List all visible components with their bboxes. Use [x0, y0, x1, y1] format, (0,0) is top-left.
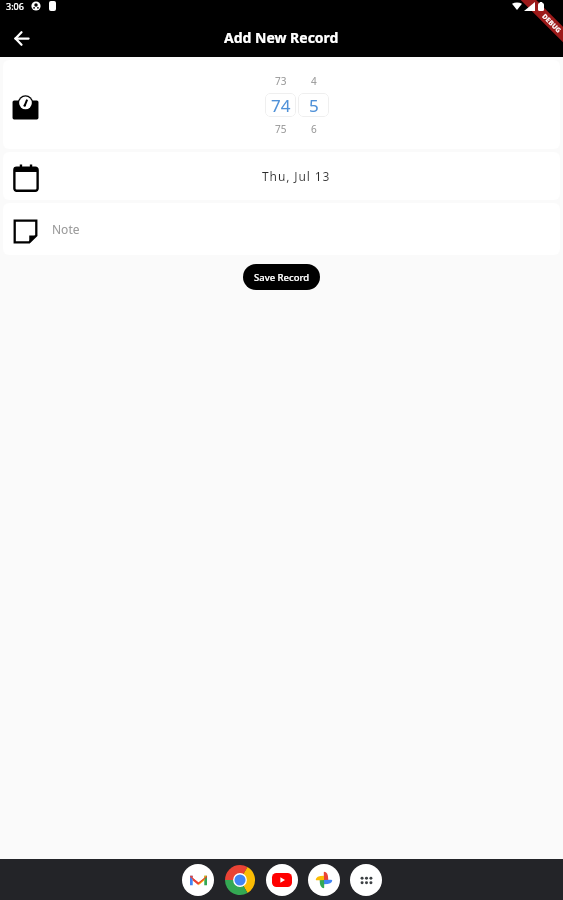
- button[interactable]: Thu, Jul 13: [3, 152, 560, 200]
- button[interactable]: Save Record: [243, 264, 320, 290]
- staticText: 4: [311, 74, 317, 88]
- button[interactable]: Note: [3, 203, 560, 255]
- button[interactable]: YouTube: [266, 864, 298, 896]
- staticText: 3:06: [6, 0, 24, 12]
- staticText: Note: [52, 221, 80, 237]
- staticText: 6: [311, 122, 317, 136]
- staticText: Add New Record: [224, 28, 339, 47]
- button[interactable]: Photos: [308, 864, 340, 896]
- staticText: 74: [271, 94, 291, 117]
- button[interactable]: 74: [265, 93, 296, 117]
- button[interactable]: Back: [9, 26, 33, 50]
- staticText: 5: [309, 94, 319, 117]
- button[interactable]: Chrome: [224, 864, 256, 896]
- staticText: 73: [275, 74, 287, 88]
- staticText: DEBUG: [540, 12, 563, 35]
- staticText: 75: [275, 122, 287, 136]
- button[interactable]: Gmail: [182, 864, 214, 896]
- staticText: Save Record: [254, 271, 310, 284]
- staticText: Thu, Jul 13: [262, 168, 331, 184]
- button[interactable]: All apps: [350, 864, 382, 896]
- button[interactable]: 5: [298, 93, 329, 117]
